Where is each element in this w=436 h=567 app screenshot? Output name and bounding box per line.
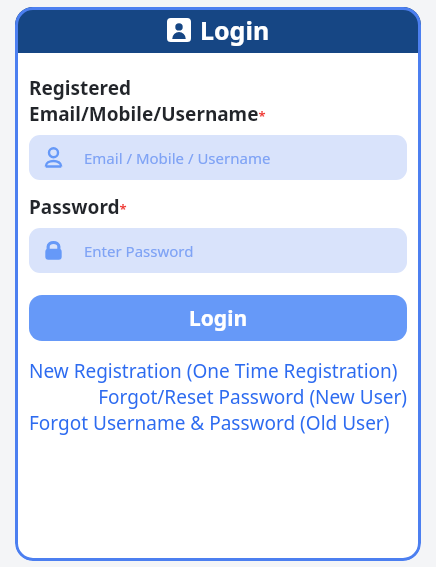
staticText: Forgot Username & Password (Old User) xyxy=(29,410,390,436)
staticText: Registered Email/Mobile/Username* xyxy=(29,75,266,126)
staticText: Login xyxy=(189,304,248,333)
staticText: Email / Mobile / Username xyxy=(84,148,271,168)
staticText: Enter Password xyxy=(84,241,194,261)
button[interactable]: Email / Mobile / Username xyxy=(29,135,407,180)
staticText: New Registration (One Time Registration) xyxy=(29,358,398,384)
staticText: Password* xyxy=(29,194,127,220)
button[interactable]: Enter Password xyxy=(29,228,407,273)
button[interactable]: New Registration (One Time Registration) xyxy=(29,358,407,384)
staticText: Login xyxy=(200,13,270,47)
button[interactable]: Login xyxy=(29,295,407,341)
other: Account xyxy=(167,18,191,42)
staticText: Forgot/Reset Password (New User) xyxy=(98,384,407,410)
button[interactable]: Forgot Username & Password (Old User) xyxy=(29,410,407,436)
button[interactable]: Forgot/Reset Password (New User) xyxy=(29,384,407,410)
